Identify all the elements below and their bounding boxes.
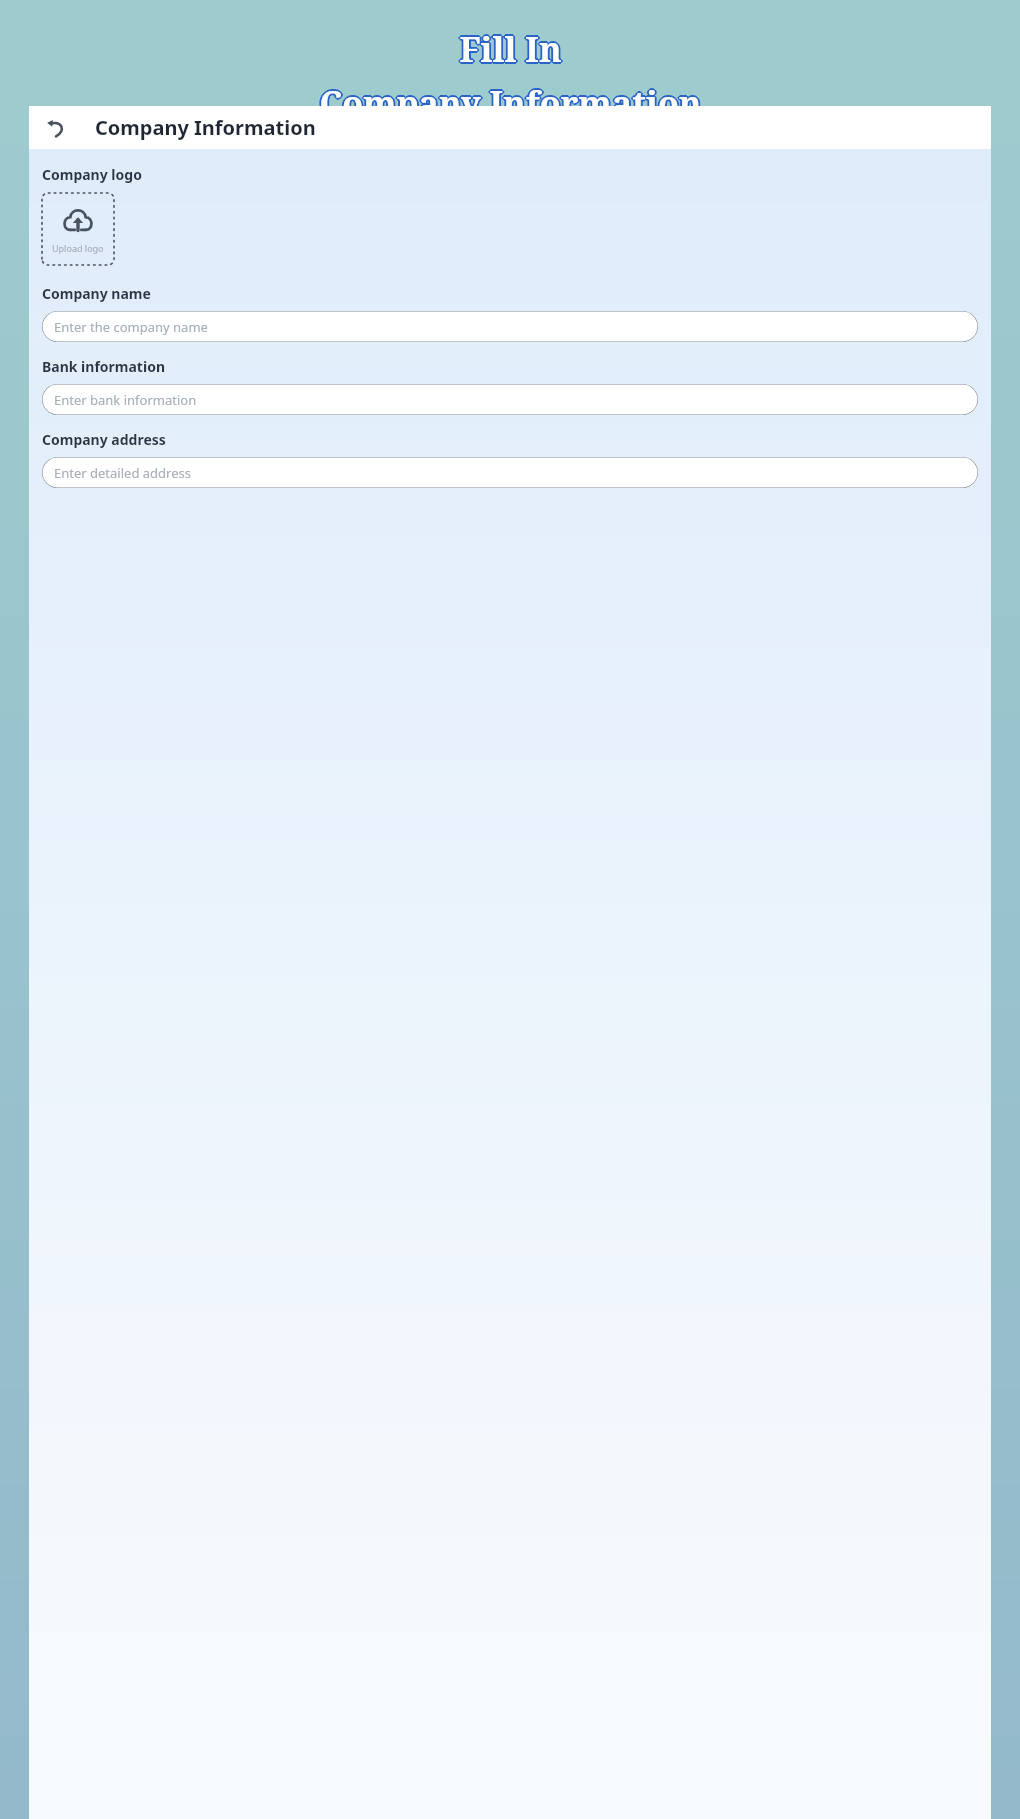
button[interactable]: Upload logo bbox=[42, 193, 114, 265]
staticText: Enter bank information bbox=[54, 391, 197, 409]
staticText: Enter the company name bbox=[54, 318, 208, 336]
staticText: Company Information bbox=[317, 80, 700, 126]
staticText: Fill In bbox=[457, 26, 560, 72]
staticText: Company address bbox=[42, 430, 166, 449]
staticText: Company logo bbox=[42, 165, 142, 184]
staticText: Fill In bbox=[460, 27, 563, 73]
staticText: Company Information bbox=[319, 78, 702, 124]
staticText: Upload logo bbox=[52, 242, 104, 254]
staticText: Company Information bbox=[321, 80, 704, 126]
staticText: Company Information bbox=[318, 79, 701, 125]
staticText: Enter detailed address bbox=[54, 464, 191, 482]
staticText: Company Information bbox=[319, 80, 702, 126]
button[interactable]: Back bbox=[39, 111, 73, 145]
staticText: Fill In bbox=[459, 24, 562, 70]
staticText: Company Information bbox=[319, 82, 702, 128]
button[interactable]: Enter bank information bbox=[42, 384, 978, 415]
staticText: Company Information bbox=[95, 114, 316, 141]
staticText: Fill In bbox=[459, 28, 562, 74]
staticText: Fill In bbox=[461, 26, 564, 72]
staticText: Fill In bbox=[459, 26, 562, 72]
staticText: Company name bbox=[42, 284, 151, 303]
staticText: Bank information bbox=[42, 357, 165, 376]
staticText: Fill In bbox=[458, 27, 561, 73]
staticText: Company Information bbox=[320, 79, 703, 125]
staticText: Fill In bbox=[460, 25, 563, 71]
staticText: Company Information bbox=[318, 81, 701, 127]
staticText: Company Information bbox=[320, 81, 703, 127]
button[interactable]: Enter detailed address bbox=[42, 457, 978, 488]
button[interactable]: Enter the company name bbox=[42, 311, 978, 342]
staticText: Fill In bbox=[458, 25, 561, 71]
